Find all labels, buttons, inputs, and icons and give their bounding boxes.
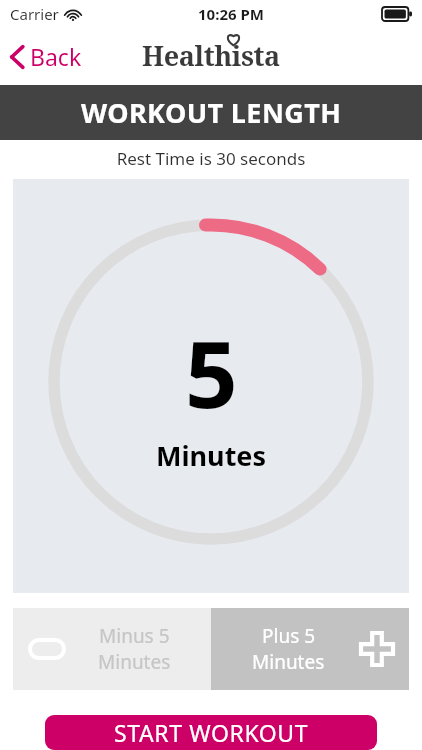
staticText: Carrier	[10, 4, 59, 24]
button[interactable]: Back	[0, 33, 94, 80]
staticText: Rest Time is 30 seconds	[0, 147, 422, 170]
staticText: Healthista	[142, 37, 280, 74]
staticText: 5	[185, 310, 238, 435]
staticText: START WORKOUT	[114, 717, 309, 748]
button[interactable]: START WORKOUT	[45, 715, 377, 750]
staticText: WORKOUT LENGTH	[81, 94, 342, 131]
staticText: Plus 5	[262, 623, 316, 649]
staticText: 10:26 PM	[198, 4, 264, 24]
staticText: Minus 5	[99, 623, 170, 649]
staticText: Minutes	[156, 437, 267, 474]
staticText: Minutes	[252, 649, 325, 675]
staticText: Back	[30, 41, 82, 72]
button[interactable]: Minus 5 Minutes	[13, 608, 211, 690]
button[interactable]: Plus 5 Minutes	[211, 608, 409, 690]
staticText: Minutes	[98, 649, 171, 675]
